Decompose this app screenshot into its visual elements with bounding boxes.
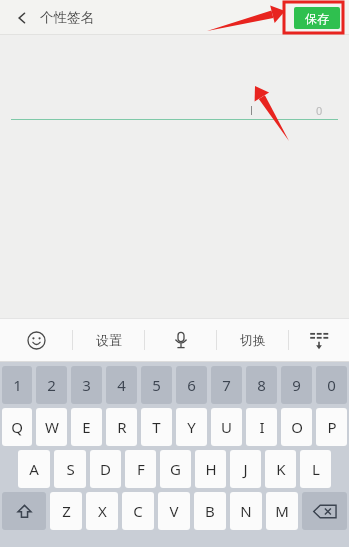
button[interactable]: X: [86, 492, 118, 530]
staticText: H: [205, 459, 217, 479]
staticText: 6: [187, 375, 196, 395]
staticText: 5: [152, 375, 161, 395]
staticText: C: [133, 501, 143, 521]
button[interactable]: 切换: [217, 318, 288, 362]
button[interactable]: Voice input: [145, 318, 216, 362]
button[interactable]: V: [158, 492, 190, 530]
staticText: N: [240, 501, 252, 521]
staticText: 切换: [240, 332, 266, 348]
staticText: D: [100, 459, 111, 479]
button[interactable]: G: [160, 450, 191, 488]
staticText: E: [82, 417, 91, 437]
staticText: O: [291, 417, 303, 437]
staticText: V: [169, 501, 179, 521]
staticText: I: [259, 417, 265, 437]
button[interactable]: C: [122, 492, 154, 530]
button[interactable]: J: [230, 450, 261, 488]
staticText: 保存: [305, 11, 329, 26]
staticText: P: [327, 417, 337, 437]
staticText: W: [45, 417, 59, 437]
button[interactable]: Emoji: [0, 318, 72, 362]
staticText: A: [29, 459, 39, 479]
button[interactable]: Hide keyboard: [289, 318, 349, 362]
staticText: 个性签名: [40, 9, 94, 26]
button[interactable]: L: [300, 450, 331, 488]
button[interactable]: O: [281, 408, 312, 446]
button[interactable]: Y: [176, 408, 207, 446]
button[interactable]: 1: [2, 366, 32, 404]
staticText: Z: [62, 501, 71, 521]
button[interactable]: 保存: [294, 7, 340, 29]
staticText: 1: [13, 375, 22, 395]
button[interactable]: B: [194, 492, 226, 530]
staticText: 0: [327, 375, 336, 395]
staticText: 设置: [96, 332, 122, 348]
staticText: Q: [11, 417, 23, 437]
staticText: J: [243, 459, 248, 479]
staticText: M: [275, 501, 289, 521]
button[interactable]: 8: [246, 366, 277, 404]
button[interactable]: S: [54, 450, 86, 488]
button[interactable]: 0: [316, 366, 347, 404]
staticText: 4: [117, 375, 126, 395]
button[interactable]: 4: [106, 366, 137, 404]
button[interactable]: K: [265, 450, 296, 488]
button[interactable]: 3: [71, 366, 102, 404]
staticText: 8: [257, 375, 266, 395]
button[interactable]: 5: [141, 366, 172, 404]
button[interactable]: Z: [50, 492, 82, 530]
button[interactable]: Q: [2, 408, 32, 446]
button[interactable]: D: [90, 450, 121, 488]
staticText: 2: [47, 375, 56, 395]
staticText: 9: [292, 375, 301, 395]
staticText: R: [117, 417, 127, 437]
button[interactable]: 9: [281, 366, 312, 404]
button[interactable]: H: [195, 450, 226, 488]
staticText: F: [137, 459, 145, 479]
button[interactable]: Shift: [2, 492, 46, 530]
staticText: L: [312, 459, 320, 479]
staticText: Y: [187, 417, 196, 437]
button[interactable]: F: [125, 450, 156, 488]
button[interactable]: N: [230, 492, 262, 530]
button[interactable]: W: [36, 408, 67, 446]
button[interactable]: 7: [211, 366, 242, 404]
staticText: 7: [222, 375, 231, 395]
button[interactable]: 设置: [73, 318, 144, 362]
staticText: X: [98, 501, 107, 521]
staticText: G: [170, 459, 181, 479]
staticText: S: [66, 459, 75, 479]
button[interactable]: A: [18, 450, 50, 488]
button[interactable]: Backspace: [302, 492, 347, 530]
button[interactable]: Back: [10, 6, 34, 30]
staticText: K: [276, 459, 286, 479]
button[interactable]: T: [141, 408, 172, 446]
button[interactable]: 6: [176, 366, 207, 404]
staticText: 0: [316, 103, 323, 118]
staticText: 3: [82, 375, 91, 395]
button[interactable]: E: [71, 408, 102, 446]
staticText: U: [221, 417, 232, 437]
button[interactable]: U: [211, 408, 242, 446]
button[interactable]: 2: [36, 366, 67, 404]
staticText: T: [152, 417, 161, 437]
button[interactable]: I: [246, 408, 277, 446]
button[interactable]: P: [316, 408, 347, 446]
button[interactable]: R: [106, 408, 137, 446]
button[interactable]: M: [266, 492, 298, 530]
staticText: B: [205, 501, 215, 521]
